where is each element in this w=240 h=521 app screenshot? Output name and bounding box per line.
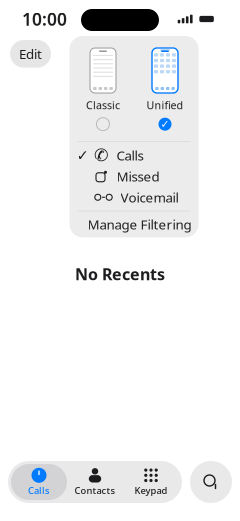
staticText: Unified <box>146 98 183 112</box>
staticText: Edit <box>19 45 42 63</box>
staticText: Keypad <box>134 484 167 497</box>
staticText: Classic <box>86 98 120 112</box>
button[interactable]: Keypad <box>123 464 179 500</box>
staticText: 10:00 <box>22 7 67 30</box>
staticText: Calls <box>28 484 50 497</box>
button[interactable]: Missed <box>69 166 198 187</box>
button[interactable]: ✓ <box>69 145 198 166</box>
button[interactable]: Edit <box>10 40 51 68</box>
button[interactable]: Search <box>190 461 232 503</box>
staticText: Calls <box>116 146 143 164</box>
button[interactable]: Unified <box>140 48 190 131</box>
staticText: Missed <box>116 167 159 185</box>
button[interactable]: Manage Filtering <box>69 211 198 237</box>
staticText: Voicemail <box>120 188 178 206</box>
button[interactable]: Classic <box>78 48 128 131</box>
staticText: Contacts <box>74 484 115 497</box>
staticText: No Recents <box>75 263 165 285</box>
staticText: Manage Filtering <box>87 215 191 233</box>
button[interactable]: Contacts <box>67 464 123 500</box>
button[interactable]: Voicemail <box>69 187 198 208</box>
staticText: ✓ <box>160 118 169 130</box>
staticText: ✆ <box>94 145 109 165</box>
staticText: ✓ <box>76 147 88 163</box>
button[interactable]: Calls <box>11 464 67 500</box>
